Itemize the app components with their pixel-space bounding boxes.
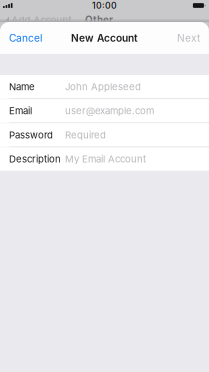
button[interactable]: Next xyxy=(156,22,200,54)
button[interactable]: Name xyxy=(0,75,209,98)
staticText: Email xyxy=(9,105,32,117)
staticText: Other xyxy=(85,14,113,26)
staticText: 10:00 xyxy=(92,0,117,11)
staticText: John Appleseed xyxy=(65,81,141,92)
button[interactable]: Cancel xyxy=(9,22,53,54)
staticText: My Email Account xyxy=(65,153,146,165)
staticText: Add Account xyxy=(12,14,72,26)
staticText: New Account xyxy=(71,32,138,44)
staticText: Cancel xyxy=(9,32,42,44)
staticText: Required xyxy=(65,129,106,141)
staticText: Description xyxy=(9,153,61,165)
button[interactable]: Email xyxy=(0,99,209,122)
button[interactable]: Description xyxy=(0,147,209,171)
staticText: user@example.com xyxy=(65,105,154,117)
button[interactable]: Password xyxy=(0,123,209,147)
staticText: Name xyxy=(9,81,35,92)
staticText: Next xyxy=(177,32,200,44)
staticText: Password xyxy=(9,129,53,141)
